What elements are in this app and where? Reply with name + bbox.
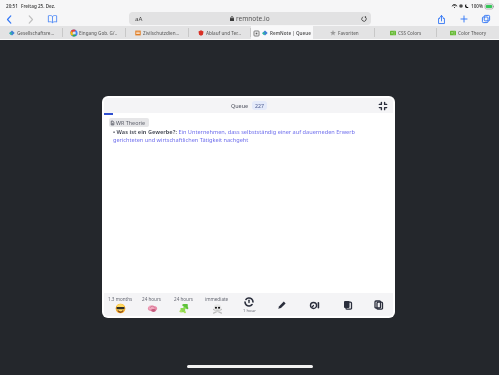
button[interactable]: 24 hours — [168, 296, 200, 314]
button[interactable]: RemNote | Queue — [251, 26, 313, 39]
button[interactable]: Forward — [23, 12, 38, 26]
button[interactable]: 1 hour — [237, 297, 261, 314]
staticText: 20:51 — [6, 3, 18, 9]
staticText: RemNote | Queue — [270, 30, 311, 36]
staticText: Color Theory — [458, 30, 487, 36]
button[interactable]: Cards — [337, 294, 359, 316]
staticText: 227 — [255, 102, 264, 109]
staticText: aA — [135, 15, 143, 23]
button[interactable]: remnote.io — [129, 12, 371, 25]
staticText: Gesellschaftsre... — [17, 30, 55, 36]
button[interactable]: Back — [1, 12, 16, 26]
button[interactable]: 1.3 months — [104, 296, 136, 314]
staticText: remnote.io — [236, 14, 270, 23]
staticText: Ablauf und Ter... — [206, 30, 242, 36]
staticText: 1 hour — [243, 308, 256, 314]
staticText: 100% — [471, 3, 483, 9]
staticText: Queue — [231, 102, 249, 109]
button[interactable]: Favoriten — [313, 26, 375, 39]
button[interactable]: New tab — [456, 12, 471, 26]
button[interactable]: Share — [434, 12, 449, 26]
button[interactable]: Bookmarks — [45, 12, 60, 26]
button[interactable]: Color Theory — [437, 26, 499, 39]
staticText: Freitag 25. Dez. — [21, 3, 56, 9]
button[interactable]: Eingang Gob. G/.. — [63, 26, 126, 39]
button[interactable]: Edit — [271, 294, 293, 316]
staticText: CSS Colors — [398, 30, 422, 36]
button[interactable]: Zivilschutzdien... — [126, 26, 189, 39]
staticText: Favoriten — [338, 30, 359, 36]
button[interactable]: Tabs — [478, 12, 493, 26]
button[interactable]: 24 hours — [136, 296, 168, 314]
staticText: 24 hours — [142, 296, 162, 302]
button[interactable]: CSS Colors — [375, 26, 437, 39]
button[interactable]: immediate — [201, 296, 233, 314]
staticText: 1.3 months — [108, 296, 133, 302]
staticText: • Was ist ein Gewerbe?: Ein Unternehmen,… — [113, 128, 363, 143]
button[interactable]: aA — [133, 14, 145, 24]
staticText: Zivilschutzdien... — [143, 30, 180, 36]
button[interactable]: Collapse — [377, 100, 388, 111]
button[interactable]: Timer — [304, 294, 326, 316]
staticText: WR Theorie — [116, 119, 146, 126]
button[interactable]: Decks — [368, 294, 390, 316]
button[interactable]: Reload — [359, 14, 368, 23]
button[interactable]: Ablauf und Ter... — [189, 26, 251, 39]
staticText: immediate — [205, 296, 229, 302]
staticText: 24 hours — [174, 296, 194, 302]
staticText: Eingang Gob. G/.. — [79, 30, 118, 36]
button[interactable]: Gesellschaftsre... — [0, 26, 63, 39]
button[interactable]: WR Theorie — [111, 119, 146, 126]
